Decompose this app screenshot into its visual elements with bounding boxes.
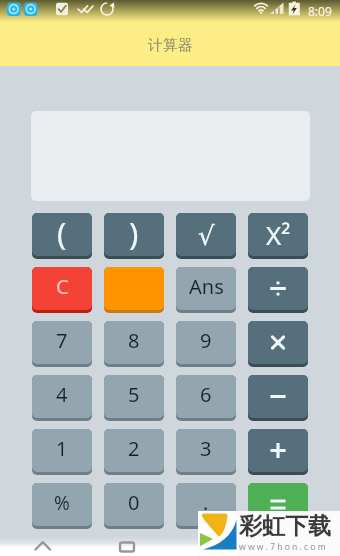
staticText: . bbox=[203, 489, 209, 516]
staticText: 6 bbox=[200, 381, 212, 408]
staticText: 2 bbox=[128, 435, 140, 462]
staticText: ( bbox=[57, 213, 67, 254]
button[interactable]: Equals bbox=[248, 483, 308, 529]
button[interactable]: 8 bbox=[104, 321, 164, 367]
button[interactable]: 1 bbox=[32, 429, 92, 475]
button[interactable]: Back bbox=[0, 537, 85, 556]
button[interactable]: 9 bbox=[176, 321, 236, 367]
staticText: w w w . 7 h o n . c o m bbox=[239, 541, 326, 553]
button[interactable]: % bbox=[32, 483, 92, 529]
button[interactable]: 5 bbox=[104, 375, 164, 421]
button[interactable]: 2 bbox=[104, 429, 164, 475]
button[interactable]: Divide bbox=[248, 267, 308, 313]
button[interactable]: 6 bbox=[176, 375, 236, 421]
button[interactable]: Ans bbox=[176, 267, 236, 313]
button[interactable]: . bbox=[176, 483, 236, 529]
button[interactable]: ) bbox=[104, 213, 164, 259]
staticText: 8 bbox=[128, 327, 140, 354]
button[interactable]: 4 bbox=[32, 375, 92, 421]
staticText: 5 bbox=[128, 381, 140, 408]
staticText: ) bbox=[129, 213, 139, 254]
button[interactable]: Plus bbox=[248, 429, 308, 475]
button[interactable]: Home bbox=[85, 537, 170, 556]
staticText: 0 bbox=[128, 489, 140, 516]
button[interactable]: ( bbox=[32, 213, 92, 259]
staticText: C bbox=[56, 273, 69, 300]
button[interactable]: 7 bbox=[32, 321, 92, 367]
staticText: 计算器 bbox=[148, 36, 193, 55]
staticText: 彩虹下载 bbox=[239, 512, 331, 541]
button[interactable]: Minus bbox=[248, 375, 308, 421]
staticText: 3 bbox=[200, 435, 212, 462]
button[interactable]: C bbox=[32, 267, 92, 313]
button[interactable]: X² bbox=[248, 213, 308, 259]
staticText: √ bbox=[198, 221, 215, 251]
button[interactable]: 0 bbox=[104, 483, 164, 529]
staticText: Ans bbox=[189, 273, 224, 300]
staticText: 4 bbox=[56, 381, 68, 408]
button[interactable]: Delete bbox=[104, 267, 164, 313]
staticText: % bbox=[54, 490, 70, 516]
button[interactable]: Multiply bbox=[248, 321, 308, 367]
staticText: 8:09 bbox=[308, 3, 332, 19]
staticText: 9 bbox=[200, 327, 212, 354]
staticText: 7 bbox=[56, 327, 68, 354]
staticText: 1 bbox=[56, 435, 68, 462]
button[interactable]: 3 bbox=[176, 429, 236, 475]
button[interactable]: √ bbox=[176, 213, 236, 259]
staticText: X² bbox=[266, 217, 291, 252]
